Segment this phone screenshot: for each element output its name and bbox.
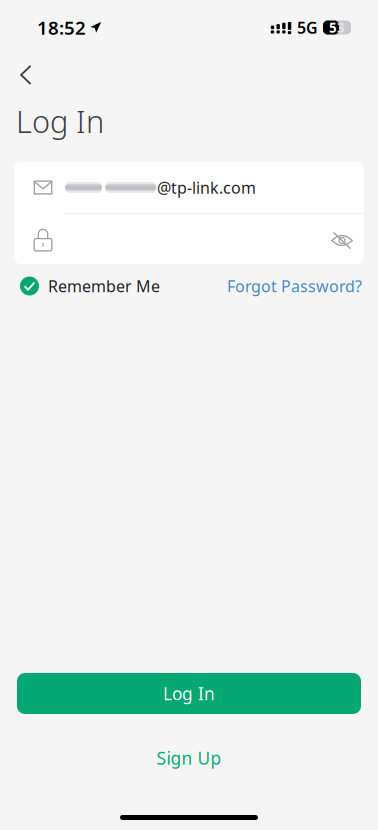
staticText: Log In [16,101,104,141]
button[interactable]: Forgot Password? [227,271,362,301]
staticText: 5G [297,17,318,38]
staticText: 18:52 [37,15,86,40]
button[interactable]: Sign Up [109,741,269,775]
button[interactable]: Remember Me [20,271,160,301]
staticText: 5 [329,19,337,36]
staticText: @tp-link.com [157,177,256,198]
button[interactable]: Back [0,55,64,95]
staticText: 3 [337,19,345,36]
button[interactable]: Show password [318,214,362,264]
staticText: Log In [163,682,215,705]
button[interactable]: Log In [17,673,361,714]
staticText: Forgot Password? [227,275,362,297]
staticText: Sign Up [156,746,221,769]
staticText: Remember Me [48,275,160,297]
